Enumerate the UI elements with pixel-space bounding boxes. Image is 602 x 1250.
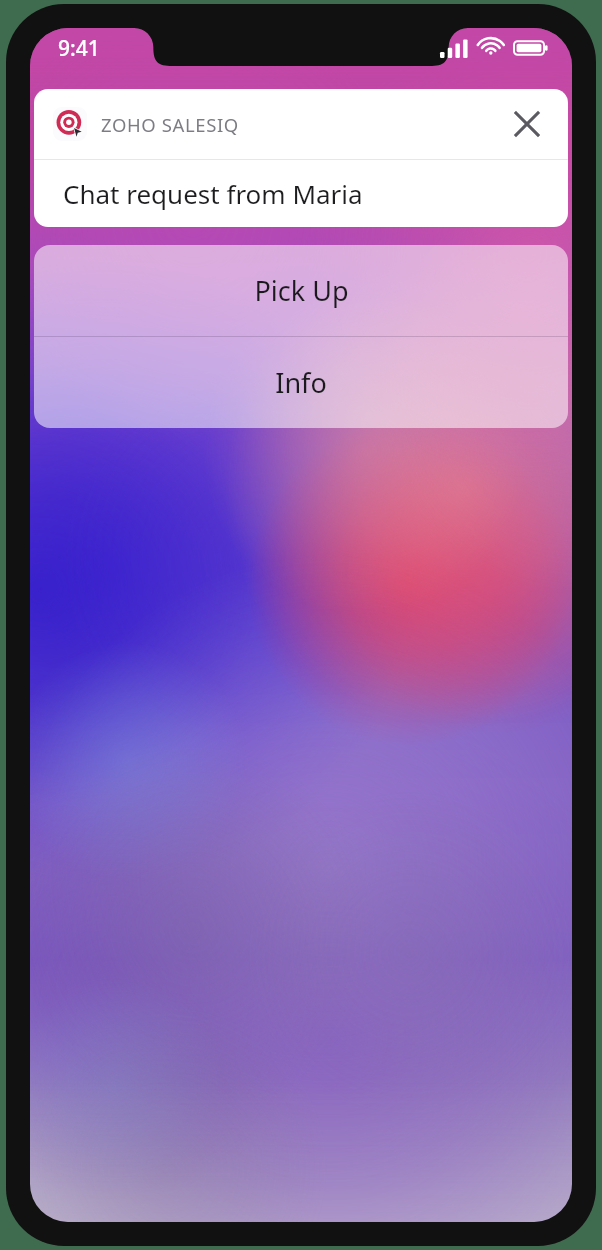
staticText: Info [275,364,327,401]
button[interactable]: Pick Up [34,245,568,336]
staticText: ZOHO SALESIQ [101,112,239,137]
button[interactable]: Dismiss notification [505,102,549,146]
staticText: Pick Up [254,272,349,309]
button[interactable]: Chat request from Maria [34,160,568,227]
button[interactable]: ZOHO SALESIQ [34,89,568,159]
staticText: 9:41 [58,34,100,63]
button[interactable]: Info [34,337,568,428]
staticText: Chat request from Maria [63,176,363,211]
